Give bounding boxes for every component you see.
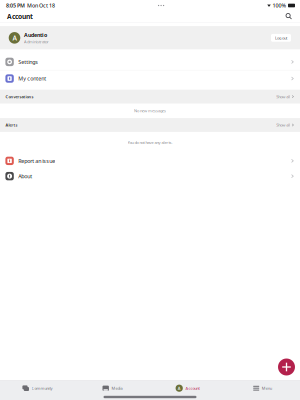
staticText: Account bbox=[185, 385, 199, 391]
button[interactable]: Create post bbox=[278, 358, 295, 375]
staticText: Report an issue bbox=[18, 157, 55, 164]
staticText: Alerts bbox=[5, 122, 17, 128]
staticText: Mon Oct 18 bbox=[25, 2, 55, 9]
button[interactable]: My content bbox=[0, 71, 300, 86]
staticText: A bbox=[178, 385, 181, 391]
button[interactable]: Show all bbox=[276, 122, 294, 128]
staticText: My content bbox=[18, 75, 46, 82]
staticText: Show all bbox=[276, 94, 290, 99]
button[interactable]: Log out bbox=[271, 34, 291, 42]
button[interactable]: A bbox=[150, 381, 225, 396]
button[interactable]: About bbox=[0, 168, 300, 184]
staticText: Audentio bbox=[24, 31, 47, 39]
staticText: No new messages bbox=[134, 108, 166, 113]
button[interactable]: Report an issue bbox=[0, 153, 300, 168]
staticText: Settings bbox=[18, 58, 38, 65]
staticText: Administrator bbox=[24, 39, 49, 44]
button[interactable]: Community bbox=[0, 381, 75, 396]
button[interactable]: Media bbox=[75, 381, 150, 396]
staticText: Account bbox=[7, 12, 33, 21]
staticText: You do not have any alerts. bbox=[127, 140, 172, 145]
button[interactable]: Settings bbox=[0, 54, 300, 70]
button[interactable]: Search bbox=[283, 11, 295, 22]
staticText: Conversations bbox=[5, 94, 33, 99]
button[interactable]: Show all bbox=[276, 94, 294, 99]
staticText: Log out bbox=[275, 35, 287, 40]
staticText: A bbox=[12, 33, 16, 42]
button[interactable]: A bbox=[0, 26, 300, 50]
staticText: About bbox=[18, 173, 32, 180]
button[interactable]: Menu bbox=[225, 381, 300, 396]
staticText: 100% bbox=[272, 2, 286, 9]
staticText: Community bbox=[32, 385, 53, 391]
staticText: Menu bbox=[262, 385, 272, 391]
staticText: Media bbox=[111, 385, 122, 391]
staticText: Show all bbox=[276, 122, 290, 128]
staticText: 8:05 PM bbox=[6, 2, 25, 9]
